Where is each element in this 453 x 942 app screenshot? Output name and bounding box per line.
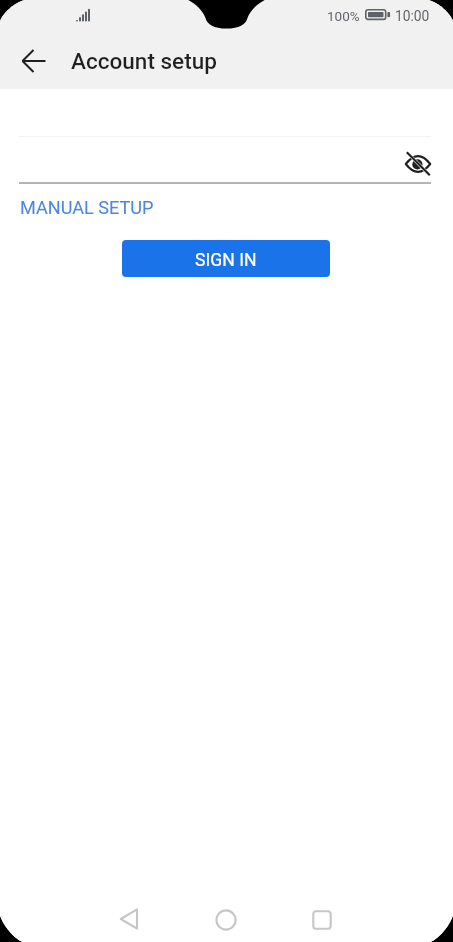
- staticText: 10:00: [395, 8, 430, 24]
- button[interactable]: Back: [101, 891, 157, 942]
- staticText: 100%: [327, 8, 360, 24]
- button[interactable]: MANUAL SETUP: [20, 197, 154, 218]
- button[interactable]: SIGN IN: [122, 240, 330, 277]
- staticText: SIGN IN: [195, 250, 257, 271]
- staticText: Account setup: [71, 48, 217, 74]
- button[interactable]: Show password: [398, 144, 438, 184]
- button[interactable]: Home: [198, 892, 254, 942]
- button[interactable]: Recent apps: [294, 892, 350, 942]
- button[interactable]: Back: [11, 38, 57, 84]
- staticText: MANUAL SETUP: [20, 197, 154, 218]
